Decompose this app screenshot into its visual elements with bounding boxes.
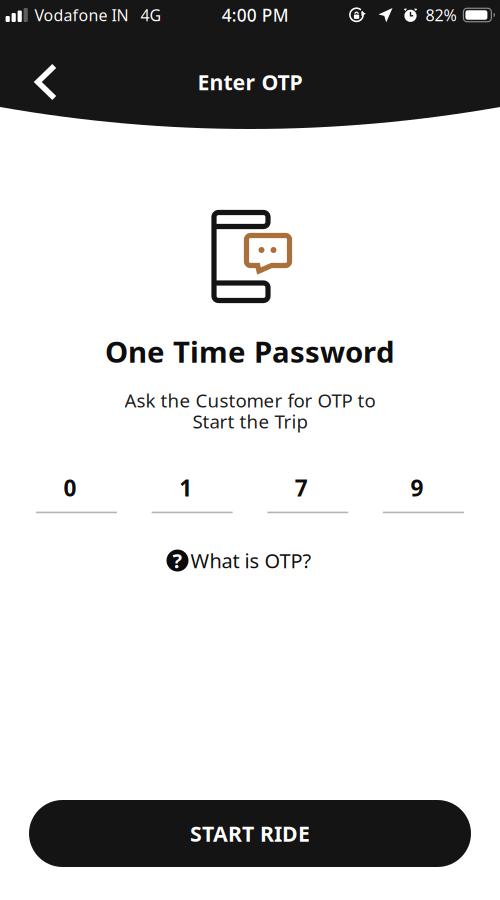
staticText: 1 — [179, 472, 192, 503]
staticText: 4:00 PM — [222, 3, 289, 26]
staticText: 7 — [295, 472, 308, 503]
staticText: One Time Password — [105, 332, 395, 371]
staticText: What is OTP? — [190, 547, 311, 574]
staticText: Ask the Customer for OTP to — [124, 388, 375, 413]
staticText: Start the Trip — [192, 409, 307, 433]
staticText: START RIDE — [190, 819, 310, 848]
staticText: ? — [172, 547, 182, 574]
button[interactable]: ? — [166, 547, 333, 574]
staticText: Vodafone IN — [34, 4, 128, 26]
staticText: 0 — [63, 472, 76, 503]
button[interactable]: START RIDE — [29, 800, 471, 867]
staticText: 4G — [140, 4, 161, 26]
button[interactable]: Back — [24, 62, 68, 102]
staticText: 9 — [410, 472, 423, 503]
staticText: 82% — [425, 4, 456, 26]
staticText: Enter OTP — [197, 68, 302, 96]
